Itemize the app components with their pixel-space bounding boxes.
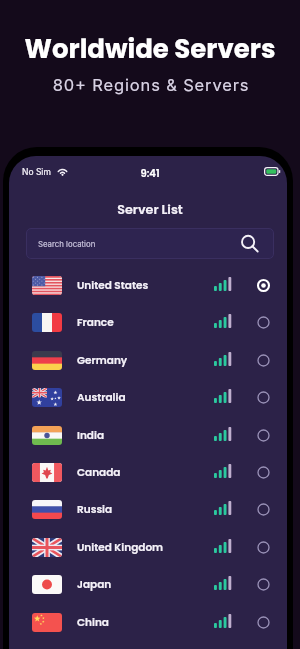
staticText: Germany <box>77 353 128 368</box>
staticText: 80+ Regions & Servers <box>1 75 300 95</box>
button[interactable]: Russia <box>9 491 287 528</box>
staticText: China <box>77 615 109 630</box>
staticText: Japan <box>77 577 112 592</box>
button[interactable]: Australia <box>9 379 287 416</box>
button[interactable]: Search location <box>26 228 274 259</box>
staticText: Server List <box>11 201 287 219</box>
staticText: Russia <box>77 502 113 517</box>
button[interactable]: France <box>9 304 287 341</box>
button[interactable]: Canada <box>9 454 287 491</box>
button[interactable]: India <box>9 417 287 454</box>
staticText: United States <box>77 278 149 293</box>
button[interactable]: Germany <box>9 342 287 379</box>
staticText: Worldwide Servers <box>0 31 300 67</box>
staticText: Search location <box>38 239 96 248</box>
staticText: United Kingdom <box>77 540 164 555</box>
button[interactable]: China <box>9 604 287 641</box>
button[interactable]: Japan <box>9 566 287 603</box>
button[interactable]: United Kingdom <box>9 529 287 566</box>
staticText: France <box>77 315 114 330</box>
button[interactable]: United States <box>9 267 287 304</box>
staticText: Canada <box>77 465 121 480</box>
staticText: India <box>77 428 105 443</box>
staticText: 9:41 <box>11 166 287 180</box>
other: Search <box>241 235 259 252</box>
staticText: No Sim <box>22 167 51 177</box>
staticText: Australia <box>77 390 126 405</box>
